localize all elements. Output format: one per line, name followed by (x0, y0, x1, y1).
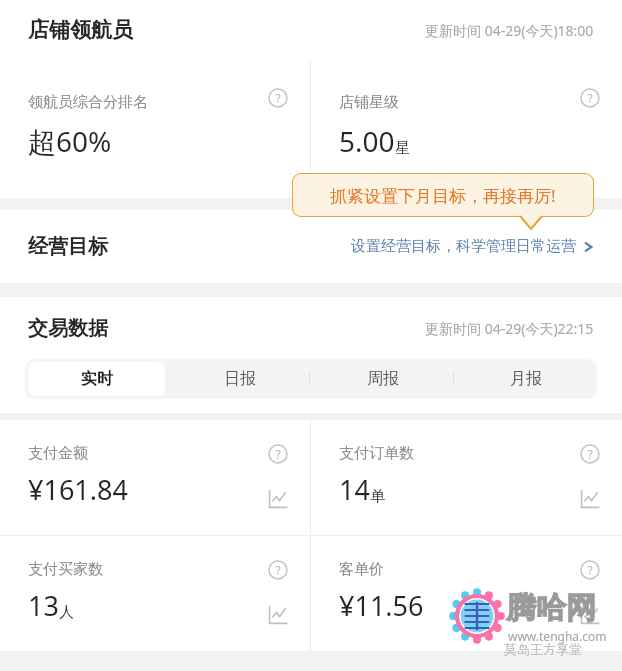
button[interactable]: 帮助说明 (268, 444, 288, 464)
staticText: ? (275, 446, 281, 462)
staticText: 14 (339, 471, 370, 508)
staticText: ? (587, 562, 593, 578)
button[interactable]: 帮助说明 (580, 88, 600, 108)
button[interactable]: 查看趋势图 (268, 605, 288, 625)
staticText: ? (275, 90, 281, 106)
button[interactable]: 查看趋势图 (580, 489, 600, 509)
staticText: 抓紧设置下月目标，再接再厉! (330, 184, 556, 207)
button[interactable]: 支付金额 (0, 420, 310, 535)
staticText: ? (587, 446, 593, 462)
staticText: 星 (395, 139, 410, 158)
staticText: ¥161.84 (28, 471, 128, 508)
button[interactable]: 店铺星级 (311, 60, 622, 198)
button[interactable]: 查看趋势图 (580, 605, 600, 625)
staticText: 单 (370, 487, 385, 506)
staticText: 交易数据 (28, 316, 108, 341)
button[interactable]: 支付买家数 (0, 536, 310, 651)
button[interactable]: 设置经营目标，科学管理日常运营 (351, 237, 594, 256)
button[interactable]: 领航员综合分排名 (0, 60, 310, 198)
staticText: 设置经营目标，科学管理日常运营 (351, 237, 576, 256)
button[interactable]: 帮助说明 (268, 88, 288, 108)
staticText: ? (587, 90, 593, 106)
staticText: ¥11.56 (339, 587, 424, 624)
button[interactable]: 周报 (311, 359, 454, 399)
staticText: 支付金额 (28, 444, 88, 463)
staticText: 支付订单数 (339, 444, 414, 463)
staticText: 实时 (81, 369, 113, 389)
button[interactable]: 实时 (28, 362, 165, 396)
staticText: 腾哈网 (506, 589, 596, 627)
staticText: 支付买家数 (28, 560, 103, 579)
staticText: 人 (59, 603, 74, 622)
button[interactable]: 帮助说明 (268, 560, 288, 580)
button[interactable]: 客单价 (311, 536, 622, 651)
staticText: 13 (28, 587, 59, 624)
button[interactable]: 帮助说明 (580, 560, 600, 580)
button[interactable]: 帮助说明 (580, 444, 600, 464)
staticText: ? (275, 562, 281, 578)
staticText: 经营目标 (28, 234, 108, 259)
staticText: 莫岛王方享堂 (504, 641, 582, 657)
staticText: 更新时间 04-29(今天)18:00 (425, 21, 594, 40)
staticText: 更新时间 04-29(今天)22:15 (425, 319, 594, 338)
staticText: 周报 (367, 369, 399, 389)
staticText: 店铺星级 (339, 93, 399, 112)
button[interactable]: 查看趋势图 (268, 489, 288, 509)
staticText: www.tengha.com (508, 628, 607, 644)
staticText: 客单价 (339, 560, 384, 579)
button[interactable]: 支付订单数 (311, 420, 622, 535)
staticText: 领航员综合分排名 (28, 93, 148, 112)
staticText: 日报 (224, 369, 256, 389)
button[interactable]: 抓紧设置下月目标，再接再厉! (292, 173, 594, 217)
staticText: 5.00 (339, 122, 395, 160)
staticText: 月报 (510, 369, 542, 389)
staticText: 店铺领航员 (28, 17, 133, 43)
staticText: 超60% (28, 122, 112, 160)
button[interactable]: 月报 (454, 359, 597, 399)
button[interactable]: 日报 (168, 359, 311, 399)
